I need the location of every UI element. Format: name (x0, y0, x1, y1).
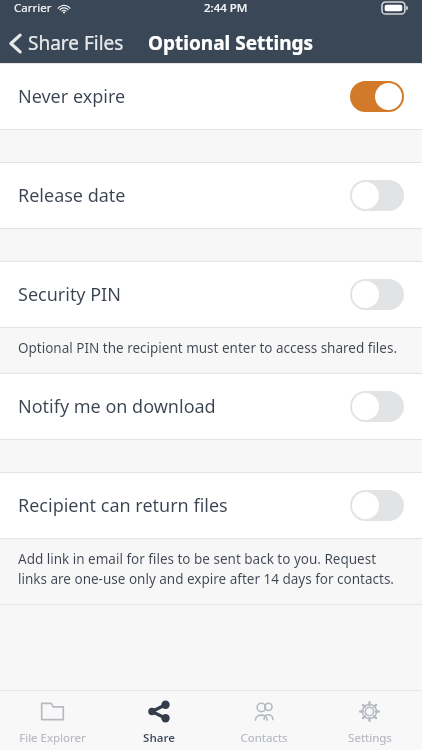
staticText: Security PIN (18, 282, 350, 307)
button[interactable]: Release date (0, 163, 422, 228)
button[interactable]: Contacts (211, 691, 316, 750)
button[interactable]: Off (350, 279, 404, 310)
button[interactable]: Off (350, 490, 404, 521)
staticText: 2:44 PM (204, 0, 248, 16)
staticText: Settings (348, 730, 392, 746)
button[interactable]: File Explorer (0, 691, 105, 750)
button[interactable]: Off (350, 180, 404, 211)
button[interactable]: Never expire (0, 64, 422, 129)
staticText: Share Files (28, 30, 124, 56)
staticText: Release date (18, 183, 350, 208)
button[interactable]: Recipient can return files (0, 473, 422, 538)
button[interactable]: Share (106, 691, 211, 750)
button[interactable]: On (350, 81, 404, 112)
staticText: Recipient can return files (18, 493, 350, 518)
staticText: Optional PIN the recipient must enter to… (18, 339, 398, 357)
staticText: File Explorer (19, 730, 86, 746)
staticText: Share (143, 730, 175, 746)
staticText: Never expire (18, 84, 350, 109)
button[interactable]: Security PIN (0, 262, 422, 327)
staticText: Add link in email for files to be sent b… (18, 550, 398, 588)
button[interactable]: Share Files (0, 26, 132, 60)
staticText: Carrier (14, 0, 52, 16)
staticText: Notify me on download (18, 394, 350, 419)
button[interactable]: Off (350, 391, 404, 422)
staticText: Contacts (240, 730, 288, 746)
button[interactable]: Settings (317, 691, 422, 750)
button[interactable]: Notify me on download (0, 374, 422, 439)
staticText: Optional Settings (148, 30, 314, 56)
